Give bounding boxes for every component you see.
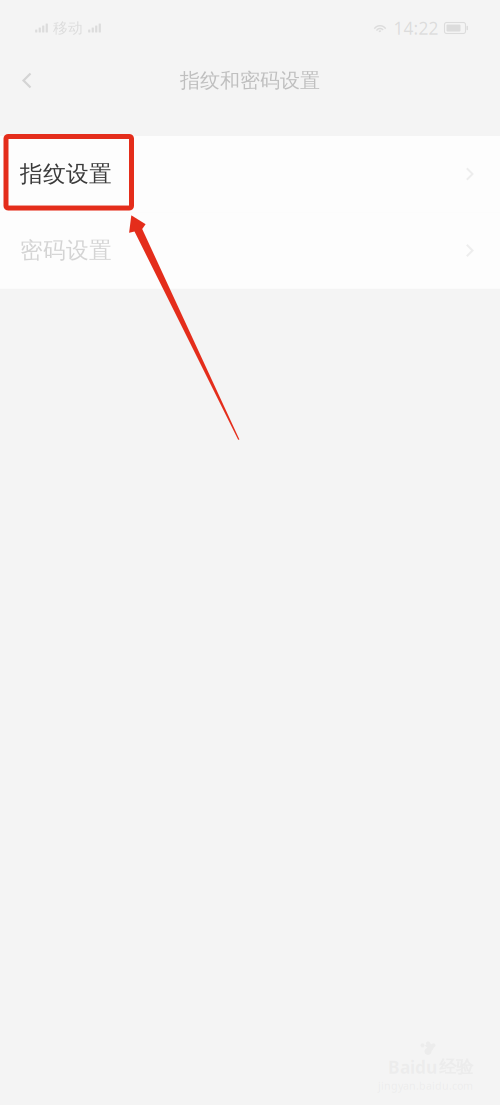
staticText: 密码设置	[20, 237, 112, 264]
button[interactable]: 密码设置	[0, 212, 500, 288]
staticText: 指纹设置	[20, 160, 112, 188]
staticText: 经验	[439, 1056, 473, 1078]
staticText: 移动	[53, 19, 83, 37]
staticText: 指纹和密码设置	[180, 68, 320, 93]
staticText: Baidu	[388, 1055, 437, 1078]
button[interactable]: Back	[5, 56, 49, 105]
staticText: 14:22	[393, 16, 438, 39]
button[interactable]: 指纹设置	[0, 136, 500, 212]
